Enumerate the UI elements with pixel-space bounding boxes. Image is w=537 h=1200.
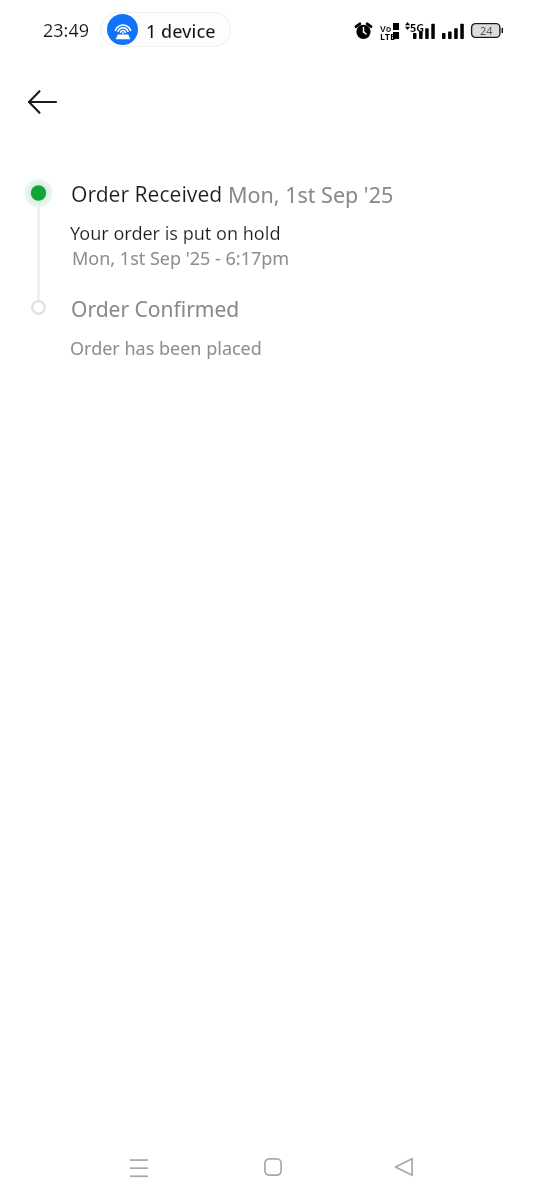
staticText: Order has been placed: [70, 336, 262, 361]
staticText: Order Confirmed: [71, 295, 240, 324]
button[interactable]: Back: [19, 79, 65, 125]
button[interactable]: Recent apps: [115, 1144, 163, 1192]
staticText: 23:49: [43, 18, 90, 43]
staticText: Order Received: [71, 180, 223, 209]
staticText: Your order is put on hold: [70, 221, 281, 246]
staticText: Mon, 1st Sep '25: [228, 180, 394, 209]
button[interactable]: 1 device connected: [101, 13, 230, 46]
button[interactable]: Home: [249, 1143, 297, 1191]
staticText: Mon, 1st Sep '25 - 6:17pm: [72, 246, 290, 271]
staticText: 24: [480, 23, 493, 38]
staticText: 5G: [410, 20, 425, 35]
button[interactable]: Back: [380, 1143, 428, 1191]
staticText: Vo: [380, 22, 392, 34]
staticText: 1 device: [146, 19, 216, 44]
staticText: LTE: [380, 30, 396, 42]
